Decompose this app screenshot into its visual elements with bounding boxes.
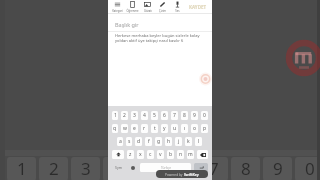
staticText: 2 — [123, 112, 126, 119]
button[interactable]: t — [151, 124, 158, 133]
staticText: 9 — [193, 112, 196, 119]
button[interactable]: f — [145, 137, 152, 146]
staticText: Gözatı — [144, 9, 152, 13]
staticText: Kategori — [112, 9, 123, 13]
button[interactable]: b — [167, 150, 174, 159]
staticText: Çizim — [159, 9, 166, 13]
button[interactable]: Enter — [194, 163, 208, 172]
button[interactable]: Kategori — [110, 0, 125, 14]
staticText: n — [179, 151, 183, 158]
button[interactable]: Space — [140, 163, 191, 172]
staticText: SwiftKey — [184, 172, 199, 177]
staticText: Herkese merhaba beyler bugün sizlerle ko… — [115, 33, 200, 44]
staticText: a — [119, 138, 122, 145]
staticText: 9 — [273, 157, 283, 180]
button[interactable]: Emoji — [128, 163, 137, 172]
staticText: 0 — [203, 112, 206, 119]
button[interactable]: u — [171, 124, 178, 133]
button[interactable]: g — [155, 137, 162, 146]
staticText: v — [159, 151, 162, 158]
button[interactable]: r — [141, 124, 148, 133]
staticText: 4 — [143, 112, 146, 119]
staticText: 1 — [17, 157, 27, 180]
staticText: 1 — [114, 112, 117, 119]
staticText: Ses — [175, 9, 180, 13]
button[interactable]: 3 — [131, 111, 138, 120]
staticText: z — [129, 151, 132, 158]
staticText: ı — [184, 125, 186, 132]
button[interactable]: o — [191, 124, 198, 133]
staticText: m — [188, 151, 193, 158]
staticText: s — [128, 138, 131, 145]
staticText: j — [178, 138, 180, 145]
staticText: Öğrenme — [126, 9, 139, 13]
staticText: 0 — [305, 157, 315, 180]
staticText: y — [163, 125, 166, 132]
button[interactable]: 2 — [121, 111, 128, 120]
staticText: q — [113, 125, 117, 132]
button[interactable]: 0 — [201, 111, 208, 120]
staticText: w — [123, 125, 127, 132]
button[interactable]: Sym — [112, 163, 125, 172]
button[interactable]: KAYDET — [189, 4, 207, 10]
button[interactable]: Öğrenme — [125, 0, 140, 14]
button[interactable]: Çizim — [155, 0, 170, 14]
staticText: Türkçe — [161, 166, 171, 170]
staticText: 4 — [113, 157, 123, 180]
button[interactable]: l — [195, 137, 202, 146]
button[interactable]: m — [187, 150, 194, 159]
staticText: 3 — [133, 112, 136, 119]
staticText: b — [169, 151, 173, 158]
button[interactable]: Backspace — [197, 150, 208, 159]
button[interactable]: 1 — [112, 111, 118, 120]
button[interactable]: e — [131, 124, 138, 133]
staticText: c — [149, 151, 152, 158]
button[interactable]: v — [157, 150, 164, 159]
button[interactable]: ı — [181, 124, 188, 133]
staticText: t — [154, 125, 156, 132]
button[interactable]: d — [135, 137, 142, 146]
staticText: 6 — [163, 112, 166, 119]
staticText: 5 — [153, 112, 156, 119]
button[interactable]: Gözatı — [140, 0, 155, 14]
button[interactable]: x — [137, 150, 144, 159]
button[interactable]: y — [161, 124, 168, 133]
button[interactable]: w — [121, 124, 128, 133]
button[interactable]: 9 — [191, 111, 198, 120]
staticText: l — [198, 138, 200, 145]
button[interactable]: a — [117, 137, 123, 146]
staticText: 5 — [145, 157, 155, 180]
button[interactable]: 6 — [161, 111, 168, 120]
staticText: o — [193, 125, 197, 132]
staticText: 7 — [173, 112, 176, 119]
button[interactable]: j — [175, 137, 182, 146]
button[interactable]: 7 — [171, 111, 178, 120]
staticText: 7 — [209, 157, 219, 180]
button[interactable]: c — [147, 150, 154, 159]
staticText: k — [187, 138, 190, 145]
button[interactable]: 8 — [181, 111, 188, 120]
button[interactable]: z — [127, 150, 134, 159]
button[interactable]: q — [112, 124, 118, 133]
button[interactable]: n — [177, 150, 184, 159]
staticText: p — [203, 125, 207, 132]
button[interactable]: h — [165, 137, 172, 146]
staticText: Powered by — [165, 173, 184, 177]
staticText: Başlık gir — [115, 21, 139, 28]
button[interactable]: 4 — [141, 111, 148, 120]
staticText: e — [133, 125, 136, 132]
staticText: r — [143, 125, 146, 132]
button[interactable]: p — [201, 124, 208, 133]
button[interactable]: 5 — [151, 111, 158, 120]
staticText: g — [157, 138, 161, 145]
staticText: 6 — [177, 157, 187, 180]
staticText: f — [148, 138, 150, 145]
button[interactable]: Ses — [170, 0, 185, 14]
button[interactable]: s — [126, 137, 132, 146]
button[interactable]: k — [185, 137, 192, 146]
staticText: h — [167, 138, 171, 145]
staticText: 8 — [241, 157, 251, 180]
staticText: Sym — [115, 165, 122, 170]
staticText: u — [173, 125, 177, 132]
button[interactable]: Shift — [112, 150, 124, 159]
